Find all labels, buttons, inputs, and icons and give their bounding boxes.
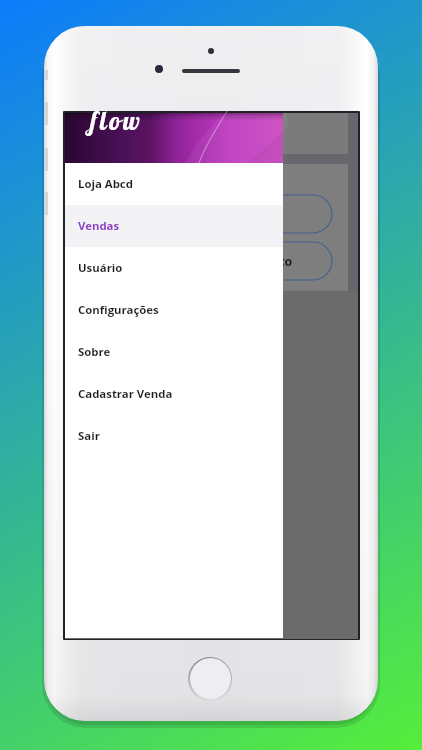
button[interactable]: Vendas [65, 205, 283, 247]
button[interactable]: Cadastrar Venda [65, 373, 283, 415]
button[interactable] [79, 195, 332, 233]
button[interactable]: Produto [79, 242, 332, 280]
staticText: Produto [242, 253, 293, 270]
button[interactable]: flow [65, 113, 283, 163]
staticText: Loja Abcd [78, 176, 133, 192]
staticText: Sair [78, 428, 100, 444]
button[interactable]: Loja Abcd [65, 163, 283, 205]
staticText: Cadastrar Venda [78, 386, 173, 402]
staticText: Sobre [78, 344, 111, 360]
button[interactable]: Configurações [65, 289, 283, 331]
button[interactable]: Usuário [65, 247, 283, 289]
staticText: Vendas [78, 218, 120, 234]
staticText: Configurações [78, 302, 159, 318]
staticText: flow [90, 111, 143, 136]
button[interactable]: Sair [65, 415, 283, 457]
button[interactable]: Home [188, 657, 232, 701]
staticText: Usuário [78, 260, 123, 276]
button[interactable]: Sobre [65, 331, 283, 373]
